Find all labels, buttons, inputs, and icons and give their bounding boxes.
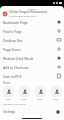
staticText: Copy (6, 98, 11, 101)
staticText: China Dragon Restaurant (9, 10, 47, 14)
button[interactable]: More (51, 86, 62, 97)
staticText: Desktop Site (3, 38, 23, 42)
staticText: Add to Shortcuts (3, 65, 29, 69)
button[interactable]: Desktop Site (0, 35, 64, 44)
button[interactable]: Website Dark Mode (0, 53, 64, 62)
staticText: Page Zoom (3, 47, 21, 51)
button[interactable]: Quick (19, 86, 30, 97)
staticText: Save as PDF (3, 74, 22, 78)
staticText: Manage share panel (3, 102, 26, 105)
button[interactable]: Save as PDF (0, 71, 64, 80)
staticText: Find in Page (3, 29, 22, 33)
button[interactable]: Copy (3, 86, 14, 97)
button[interactable]: China Dragon Restaurant (2, 10, 64, 17)
staticText: Share (37, 98, 43, 101)
button[interactable]: Bookmark Page (0, 17, 64, 26)
button[interactable]: Share (35, 86, 46, 97)
staticText: Website Dark Mode (3, 56, 34, 60)
staticText: Share (3, 81, 11, 85)
staticText: Bookmark Page (3, 20, 28, 24)
button[interactable]: Add to Shortcuts (0, 62, 64, 71)
button[interactable]: Page Zoom (0, 44, 64, 53)
staticText: Settings (3, 110, 16, 114)
staticText: Quick (21, 98, 27, 101)
staticText: More (53, 98, 59, 101)
staticText: chinadragonvienna.com (9, 14, 37, 17)
button[interactable]: Settings (0, 108, 64, 116)
button[interactable]: Find in Page (0, 26, 64, 35)
